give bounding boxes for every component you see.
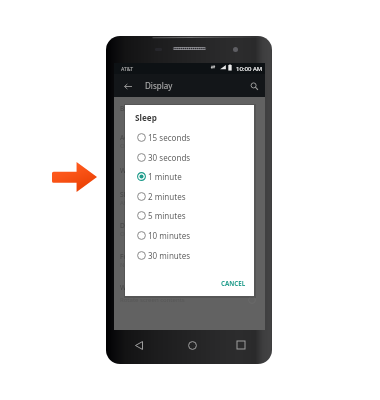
button[interactable]: CANCEL: [221, 279, 246, 287]
staticText: Normal: [120, 261, 142, 269]
staticText: 5 minutes: [148, 210, 186, 221]
button[interactable]: 5 minutes: [125, 205, 254, 225]
button[interactable]: Recent apps: [233, 337, 249, 353]
button[interactable]: 30 minutes: [125, 245, 254, 265]
staticText: 1 minute: [148, 171, 182, 182]
button[interactable]: Home: [184, 337, 200, 353]
staticText: CANCEL: [221, 279, 246, 287]
staticText: Adaptive brightness: [120, 133, 182, 142]
button[interactable]: Search: [246, 78, 262, 94]
staticText: Sleep: [135, 112, 157, 123]
button[interactable]: 15 seconds: [125, 127, 254, 147]
staticText: Rotate screen contents: [120, 296, 185, 304]
staticText: 15 seconds: [148, 132, 191, 143]
staticText: Display: [145, 80, 173, 91]
staticText: 10:00 AM: [236, 65, 263, 73]
staticText: After 1 minute of inactivity: [120, 199, 195, 207]
button[interactable]: 30 seconds: [125, 147, 254, 167]
staticText: Daydream: [120, 221, 153, 230]
staticText: When device is rotated: [120, 283, 191, 292]
button[interactable]: 1 minute: [125, 166, 254, 186]
staticText: 10 minutes: [148, 230, 191, 241]
button[interactable]: 10 minutes: [125, 225, 254, 245]
staticText: 30 minutes: [148, 250, 191, 261]
staticText: Optimize brightness level: [120, 142, 192, 150]
staticText: Sleep: [120, 190, 137, 199]
button[interactable]: Back: [120, 80, 136, 93]
staticText: Off: [120, 230, 129, 238]
button[interactable]: 2 minutes: [125, 186, 254, 206]
staticText: Brightness level: [120, 104, 170, 113]
staticText: AT&T: [121, 65, 134, 72]
staticText: 30 seconds: [148, 152, 191, 163]
button[interactable]: Back: [131, 337, 147, 353]
staticText: 2 minutes: [148, 191, 186, 202]
other: Pointer arrow: [52, 162, 97, 192]
staticText: Wallpaper: [120, 166, 152, 175]
staticText: Font size: [120, 252, 148, 261]
